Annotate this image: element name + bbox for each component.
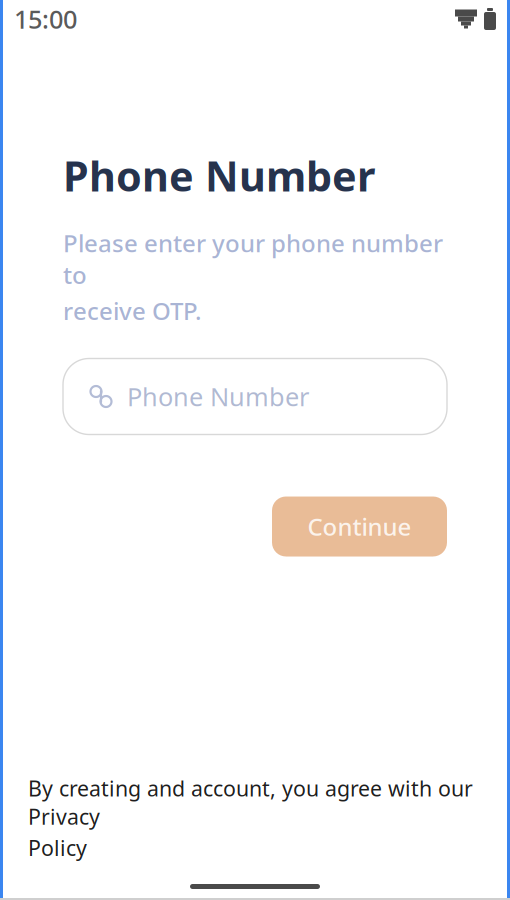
button[interactable]: Continue [272, 496, 447, 556]
staticText: Please enter your phone number to [63, 227, 443, 291]
staticText: Continue [307, 511, 411, 542]
staticText: Policy [28, 834, 87, 862]
staticText: 15:00 [14, 2, 77, 36]
staticText: Phone Number [127, 380, 309, 413]
staticText: Phone Number [63, 148, 375, 203]
staticText: receive OTP. [63, 295, 202, 326]
button[interactable]: Phone Number [63, 358, 447, 434]
staticText: By creating and account, you agree with … [28, 774, 473, 831]
